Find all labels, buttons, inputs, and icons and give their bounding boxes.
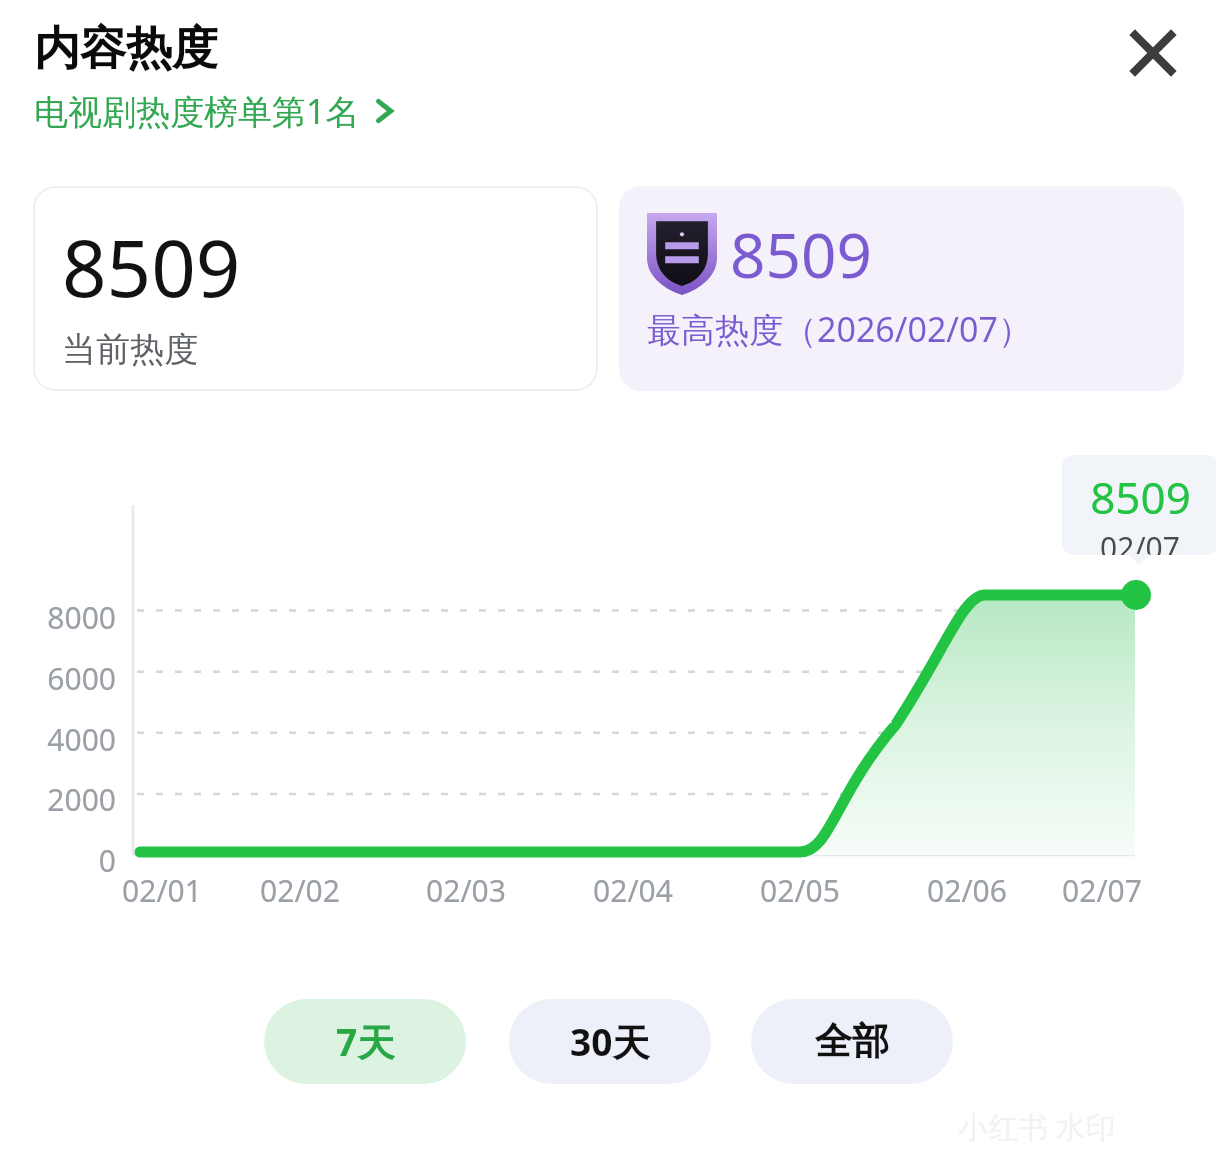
staticText: 02/02 — [230, 870, 370, 911]
staticText: 7天 — [336, 1016, 395, 1067]
staticText: 小红书 水印 — [958, 1106, 1116, 1147]
staticText: 02/06 — [897, 870, 1037, 911]
staticText: 内容热度 — [34, 20, 218, 78]
staticText: 当前热度 — [62, 328, 198, 371]
button[interactable]: 7天 — [264, 999, 466, 1084]
staticText: 02/03 — [396, 870, 536, 911]
staticText: 2000 — [0, 779, 116, 820]
staticText: 8000 — [0, 597, 116, 638]
staticText: 8509 — [730, 212, 872, 296]
staticText: 0 — [0, 840, 116, 881]
staticText: 02/01 — [92, 870, 232, 911]
staticText: 6000 — [0, 658, 116, 699]
staticText: 8509 — [62, 214, 241, 320]
staticText: 电视剧热度榜单第1名 — [34, 88, 360, 134]
button[interactable]: 8509 — [33, 186, 598, 391]
staticText: 最高热度（2026/02/07） — [647, 306, 1032, 352]
button[interactable]: 电视剧热度榜单第1名 — [34, 88, 398, 134]
button[interactable]: Close — [1113, 13, 1193, 93]
button[interactable]: 小红书 水印 — [958, 1106, 1116, 1147]
button[interactable]: 8509 — [619, 186, 1184, 391]
staticText: 02/05 — [730, 870, 870, 911]
staticText: 全部 — [815, 1018, 889, 1065]
button[interactable]: 全部 — [751, 999, 953, 1084]
staticText: 4000 — [0, 719, 116, 760]
staticText: 8509 — [1090, 467, 1191, 527]
staticText: 30天 — [570, 1016, 650, 1067]
button[interactable]: 30天 — [509, 999, 711, 1084]
staticText: 02/07 — [1032, 870, 1172, 911]
staticText: 02/07 — [1100, 527, 1180, 555]
staticText: 02/04 — [563, 870, 703, 911]
